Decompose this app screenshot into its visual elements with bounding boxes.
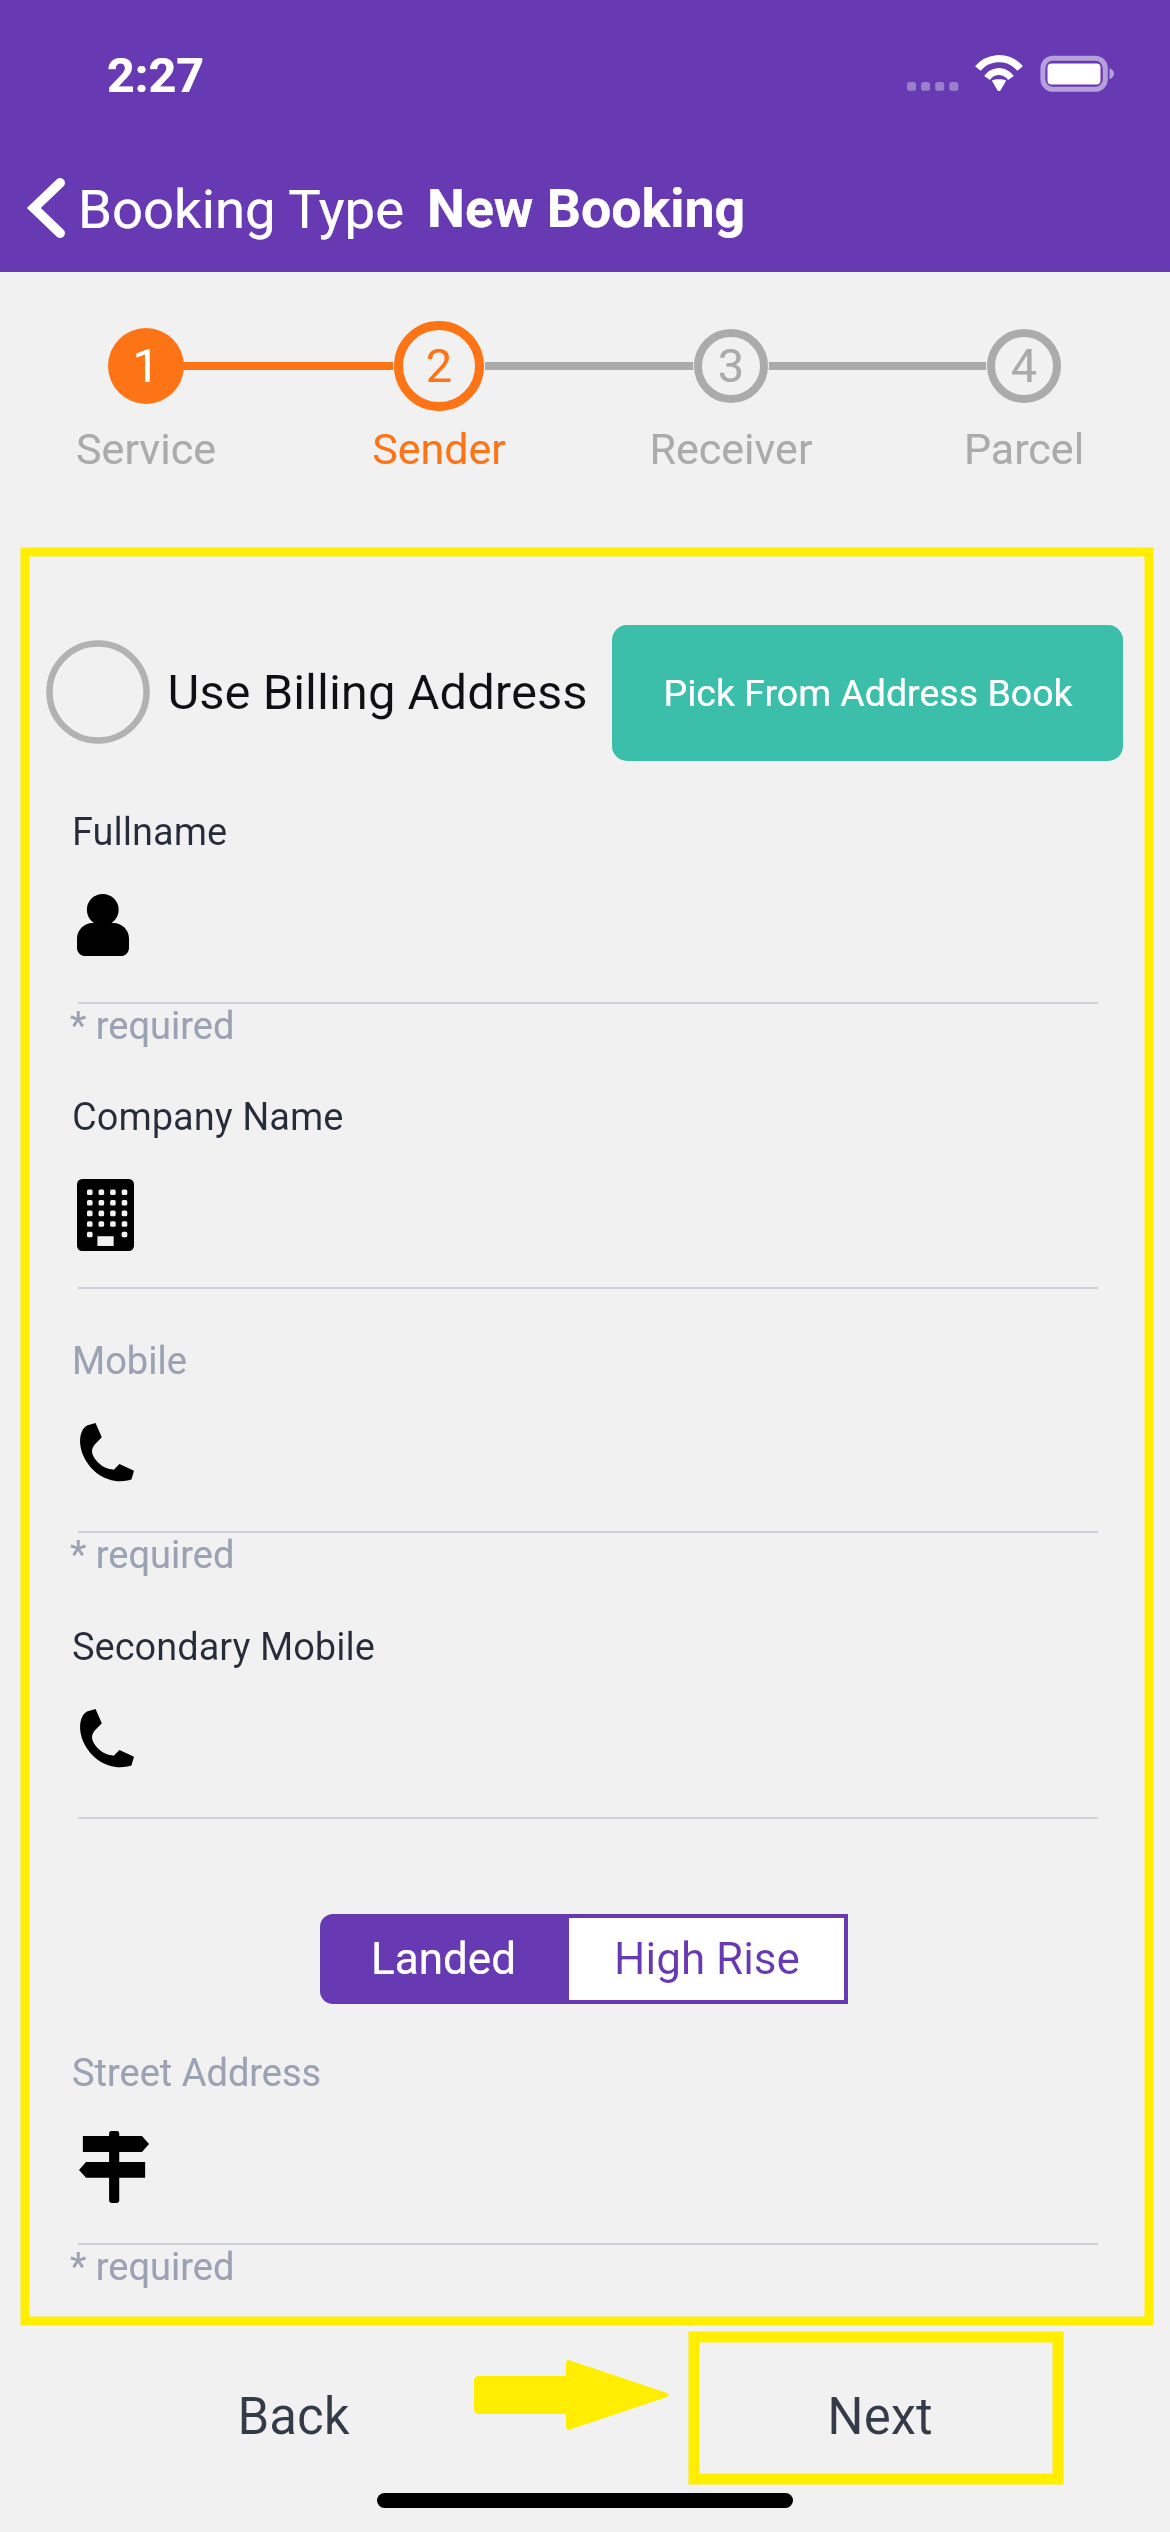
- button[interactable]: Use Billing Address: [42, 634, 588, 750]
- staticText: 4: [878, 338, 1170, 393]
- staticText: 2:27: [107, 47, 205, 104]
- staticText: * required: [70, 1004, 235, 1049]
- staticText: New Booking: [427, 177, 746, 240]
- staticText: 2: [293, 338, 585, 393]
- staticText: Sender: [293, 424, 585, 474]
- button[interactable]: Back: [6, 167, 88, 249]
- staticText: * required: [70, 2245, 235, 2290]
- staticText: Fullname: [72, 810, 228, 855]
- staticText: * required: [70, 1533, 235, 1578]
- staticText: Back: [237, 2387, 350, 2447]
- button[interactable]: Pick From Address Book: [612, 625, 1123, 761]
- staticText: High Rise: [614, 1933, 800, 1985]
- staticText: Parcel: [878, 424, 1170, 474]
- button[interactable]: Landed: [320, 1914, 566, 2004]
- staticText: Street Address: [72, 2051, 322, 2096]
- button[interactable]: 4: [878, 310, 1170, 475]
- button[interactable]: Next: [693, 2341, 1067, 2493]
- staticText: 3: [585, 338, 877, 393]
- staticText: Pick From Address Book: [663, 671, 1073, 715]
- staticText: Service: [0, 424, 292, 474]
- button[interactable]: High Rise: [565, 1914, 848, 2004]
- button[interactable]: 3: [585, 310, 877, 475]
- staticText: Receiver: [585, 424, 877, 474]
- staticText: 1: [0, 338, 292, 393]
- staticText: Secondary Mobile: [72, 1625, 375, 1670]
- staticText: Landed: [371, 1933, 516, 1985]
- staticText: Booking Type: [78, 177, 405, 241]
- staticText: Next: [827, 2387, 933, 2447]
- staticText: Use Billing Address: [167, 664, 588, 721]
- button[interactable]: 2: [293, 310, 585, 475]
- staticText: Mobile: [72, 1339, 187, 1384]
- button[interactable]: 1: [0, 310, 292, 475]
- button[interactable]: Back: [180, 2341, 406, 2493]
- staticText: Company Name: [72, 1095, 344, 1140]
